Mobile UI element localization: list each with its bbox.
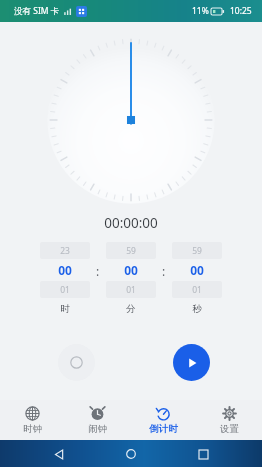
button[interactable]: Back <box>46 441 72 467</box>
button[interactable]: 59 <box>172 242 222 315</box>
staticText: 59 <box>126 245 136 257</box>
staticText: 00 <box>190 262 204 278</box>
staticText: 闹钟 <box>88 423 107 435</box>
button[interactable]: 59 <box>106 242 156 315</box>
staticText: 11% <box>192 5 209 17</box>
button[interactable]: 设置 <box>196 400 262 440</box>
staticText: 23 <box>60 245 70 257</box>
staticText: 01 <box>192 284 202 296</box>
staticText: : <box>96 263 100 279</box>
staticText: 00 <box>58 262 72 278</box>
button[interactable]: 闹钟 <box>65 400 130 440</box>
staticText: 时钟 <box>23 423 42 435</box>
staticText: 01 <box>126 284 136 296</box>
button[interactable]: Recents <box>190 441 216 467</box>
button[interactable]: Reset <box>58 344 95 381</box>
button[interactable]: 倒计时 <box>130 400 196 440</box>
staticText: 秒 <box>192 303 202 315</box>
staticText: 10:25 <box>230 5 252 17</box>
staticText: 分 <box>126 303 136 315</box>
button[interactable]: 时钟 <box>0 400 65 440</box>
staticText: 01 <box>60 284 70 296</box>
button[interactable]: 23 <box>40 242 90 315</box>
staticText: : <box>162 263 166 279</box>
staticText: 没有 SIM 卡 <box>14 5 60 17</box>
staticText: 00:00:00 <box>104 214 158 232</box>
button[interactable]: Home <box>118 441 144 467</box>
staticText: 倒计时 <box>149 423 178 435</box>
staticText: 设置 <box>220 423 239 435</box>
staticText: 00 <box>124 262 138 278</box>
staticText: 59 <box>192 245 202 257</box>
button[interactable]: Start <box>173 344 210 381</box>
staticText: 时 <box>60 303 70 315</box>
